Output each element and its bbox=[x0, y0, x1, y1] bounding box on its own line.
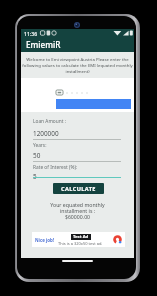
button[interactable]: Nice job! bbox=[32, 232, 125, 247]
staticText: Nice job! bbox=[35, 237, 54, 243]
staticText: Years: bbox=[33, 142, 47, 149]
staticText: EmiemiR bbox=[26, 39, 61, 50]
other: Advertisement bbox=[113, 235, 122, 244]
staticText: Your equated monthly installment is : $6… bbox=[21, 201, 134, 220]
staticText: 11:36 bbox=[24, 30, 38, 37]
staticText: 1200000 bbox=[33, 129, 59, 138]
staticText: 50 bbox=[33, 151, 41, 160]
button[interactable]: EmiemiR bbox=[21, 37, 134, 52]
staticText: CALCULATE bbox=[61, 185, 96, 193]
staticText: Rate of Interest (%): bbox=[33, 164, 78, 171]
staticText: 5 bbox=[33, 172, 37, 181]
staticText: Welcome to Emi viewpoint Austria Please … bbox=[22, 56, 133, 74]
button[interactable]: CALCULATE bbox=[53, 183, 104, 194]
staticText: Loan Amount : bbox=[33, 118, 66, 125]
staticText: Test Ad bbox=[73, 234, 89, 240]
staticText: This is a 320x50 test ad. bbox=[58, 241, 103, 246]
